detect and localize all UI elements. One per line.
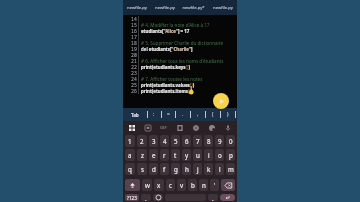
button[interactable]: c: [166, 179, 175, 191]
button[interactable]: :: [147, 108, 161, 121]
button[interactable]: Shift: [125, 179, 140, 191]
staticText: g: [174, 165, 178, 173]
button[interactable]: newfile.py: [208, 0, 237, 15]
button[interactable]: GIF: [158, 122, 169, 133]
button[interactable]: w: [142, 179, 152, 191]
staticText: print(etudiants.keys()): [141, 64, 191, 70]
staticText: 23: [131, 70, 137, 76]
staticText: q: [128, 165, 132, 173]
button[interactable]: 0: [226, 135, 235, 147]
button[interactable]: t: [171, 149, 180, 161]
button[interactable]: Settings: [190, 122, 201, 133]
button[interactable]: 4: [160, 135, 169, 147]
staticText: 5: [174, 137, 178, 145]
staticText: print(etudiants.items()): [141, 88, 193, 94]
button[interactable]: (: [205, 108, 220, 121]
staticText: newfile.py: [213, 5, 233, 11]
button[interactable]: q: [125, 163, 135, 175]
button[interactable]: Stickers: [206, 122, 217, 133]
button[interactable]: s: [137, 163, 147, 175]
button[interactable]: ,: [190, 108, 205, 121]
button[interactable]: 2: [137, 135, 147, 147]
button[interactable]: 8: [204, 135, 213, 147]
staticText: ': [214, 181, 216, 189]
staticText: c: [169, 181, 172, 189]
button[interactable]: m: [226, 163, 235, 175]
staticText: r: [163, 151, 166, 159]
staticText: Tab: [131, 112, 139, 118]
staticText: o: [218, 151, 222, 159]
staticText: b: [191, 181, 195, 189]
button[interactable]: .: [175, 108, 190, 121]
button[interactable]: d: [149, 163, 158, 175]
button[interactable]: Enter: [220, 194, 235, 201]
button[interactable]: j: [193, 163, 202, 175]
button[interactable]: Backspace: [221, 179, 235, 191]
staticText: newfile.py*: [182, 5, 205, 11]
button[interactable]: u: [193, 149, 202, 161]
button[interactable]: Clipboard: [142, 122, 153, 133]
button[interactable]: newfile.py*: [179, 0, 208, 15]
button[interactable]: ,: [141, 194, 151, 201]
button[interactable]: z: [137, 149, 147, 161]
staticText: 7: [196, 137, 200, 145]
staticText: =: [167, 111, 170, 118]
staticText: d: [152, 165, 156, 173]
button[interactable]: ': [210, 179, 219, 191]
staticText: print(etudiants.values()): [141, 82, 195, 88]
staticText: n: [202, 181, 206, 189]
button[interactable]: ?123: [125, 194, 139, 201]
staticText: k: [207, 165, 211, 173]
staticText: 18: [131, 40, 137, 46]
button[interactable]: h: [182, 163, 191, 175]
button[interactable]: ): [220, 108, 235, 121]
button[interactable]: 9: [215, 135, 224, 147]
staticText: 9: [218, 137, 222, 145]
button[interactable]: Apps: [126, 122, 137, 133]
button[interactable]: n: [199, 179, 208, 191]
button[interactable]: 1: [125, 135, 135, 147]
button[interactable]: g: [171, 163, 180, 175]
button[interactable]: newfile.py: [123, 0, 151, 15]
staticText: # 5. Supprimer Charlie du dictionnaire: [141, 40, 224, 46]
staticText: w: [145, 181, 150, 189]
staticText: 6: [185, 137, 189, 145]
button[interactable]: Voice input: [222, 122, 233, 133]
button[interactable]: r: [160, 149, 169, 161]
button[interactable]: 5: [171, 135, 180, 147]
staticText: newfile.py: [127, 5, 147, 11]
staticText: 3: [152, 137, 156, 145]
button[interactable]: x: [154, 179, 164, 191]
button[interactable]: Run code: [213, 93, 229, 109]
staticText: # 7. Afficher toutes les notes: [141, 76, 203, 82]
button[interactable]: =: [161, 108, 175, 121]
staticText: 16: [131, 28, 137, 34]
button[interactable]: e: [149, 149, 158, 161]
staticText: .: [212, 194, 214, 201]
button[interactable]: v: [177, 179, 186, 191]
staticText: t: [174, 151, 177, 159]
staticText: 20: [131, 52, 137, 58]
button[interactable]: y: [182, 149, 191, 161]
button[interactable]: 7: [193, 135, 202, 147]
button[interactable]: b: [188, 179, 197, 191]
staticText: y: [185, 151, 189, 159]
button[interactable]: k: [204, 163, 213, 175]
button[interactable]: Emoji: [153, 194, 163, 201]
button[interactable]: p: [226, 149, 235, 161]
button[interactable]: l: [215, 163, 224, 175]
button[interactable]: 6: [182, 135, 191, 147]
button[interactable]: .: [208, 194, 218, 201]
staticText: (: [212, 111, 214, 118]
button[interactable]: Tab: [123, 108, 147, 121]
button[interactable]: a: [125, 149, 135, 161]
button[interactable]: 3: [149, 135, 158, 147]
staticText: m: [228, 165, 234, 173]
button[interactable]: f: [160, 163, 169, 175]
button[interactable]: newfile.py: [151, 0, 179, 15]
button[interactable]: i: [204, 149, 213, 161]
button[interactable]: o: [215, 149, 224, 161]
button[interactable]: Translate: [174, 122, 185, 133]
staticText: e: [152, 151, 156, 159]
